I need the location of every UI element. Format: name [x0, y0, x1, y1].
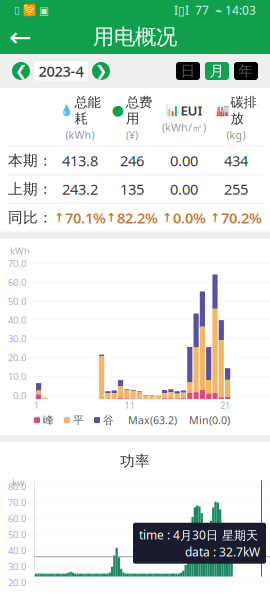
- staticText: 11: [124, 399, 134, 411]
- staticText: 🏭: [215, 104, 228, 116]
- staticText: 243.2: [62, 179, 98, 199]
- staticText: 40.0: [8, 314, 26, 326]
- staticText: 70.2%: [221, 208, 262, 227]
- staticText: Max(63.2): [128, 413, 177, 427]
- staticText: 10.0: [8, 370, 26, 383]
- staticText: 年: [238, 62, 253, 80]
- staticText: 功率: [120, 452, 150, 470]
- staticText: 平: [73, 414, 84, 427]
- staticText: 40.0: [8, 544, 26, 557]
- staticText: 413.8: [62, 151, 98, 170]
- staticText: ⬤: [112, 104, 124, 116]
- staticText: (kWh): [65, 128, 94, 142]
- staticText: ↑: [54, 211, 64, 224]
- staticText: 🛜 ▣: [20, 3, 49, 17]
- staticText: 60.0: [8, 276, 26, 288]
- staticText: ←: [9, 22, 31, 52]
- staticText: 30.0: [8, 560, 26, 573]
- staticText: 70.0: [8, 257, 26, 269]
- staticText: ❮: [15, 63, 27, 79]
- staticText: 上期：: [8, 180, 53, 198]
- staticText: 246: [120, 151, 144, 170]
- staticText: 日: [180, 62, 195, 80]
- staticText: 434: [224, 151, 248, 170]
- staticText: 📊: [165, 104, 178, 116]
- staticText: ↑: [210, 211, 220, 224]
- staticText: ↑: [106, 211, 116, 224]
- button[interactable]: 日: [176, 62, 200, 80]
- staticText: 0.00: [170, 151, 198, 170]
- staticText: data : 32.7kW: [185, 544, 260, 560]
- staticText: 0.00: [170, 179, 198, 199]
- staticText: EUI: [180, 101, 202, 119]
- button[interactable]: 月: [205, 62, 229, 80]
- staticText: 0.0: [13, 389, 26, 401]
- staticText: 本期：: [8, 151, 53, 169]
- staticText: time : 4月30日 星期天: [139, 527, 258, 543]
- staticText: 谷: [103, 414, 114, 427]
- staticText: ▯: [14, 4, 20, 16]
- staticText: 70.1%: [65, 208, 106, 227]
- staticText: 碳排放: [230, 94, 256, 127]
- staticText: 50.0: [8, 295, 26, 307]
- staticText: 135: [120, 179, 144, 199]
- staticText: 总费用: [126, 94, 152, 127]
- staticText: 82.2%: [117, 208, 158, 227]
- staticText: (¥): [126, 128, 138, 142]
- staticText: 80.0: [8, 480, 26, 493]
- staticText: 月: [209, 62, 224, 80]
- button[interactable]: Back: [0, 20, 40, 54]
- staticText: 同比：: [8, 209, 53, 227]
- staticText: ↑: [162, 211, 172, 224]
- staticText: kw: [12, 476, 24, 488]
- staticText: (kg): [226, 128, 245, 142]
- button[interactable]: 年: [234, 62, 258, 80]
- staticText: Min(0.0): [189, 413, 230, 427]
- staticText: kWh: [10, 245, 30, 257]
- staticText: 20.0: [8, 576, 26, 589]
- staticText: 21: [220, 399, 230, 411]
- staticText: 20.0: [8, 351, 26, 364]
- button[interactable]: Next period: [92, 62, 110, 80]
- button[interactable]: Previous period: [12, 62, 30, 80]
- staticText: 💧: [59, 104, 72, 116]
- staticText: 峰: [43, 414, 54, 427]
- staticText: I▯I 77 ⌁ 14:03: [174, 2, 256, 18]
- staticText: 60.0: [8, 512, 26, 525]
- staticText: 30.0: [8, 332, 26, 345]
- staticText: 总能耗: [74, 94, 100, 127]
- staticText: ❯: [95, 63, 107, 79]
- staticText: 70.0: [8, 496, 26, 509]
- staticText: 50.0: [8, 528, 26, 541]
- staticText: 1: [34, 399, 39, 411]
- staticText: 0.0%: [173, 208, 206, 227]
- staticText: (kWh/㎡): [162, 120, 206, 134]
- staticText: 用电概况: [93, 24, 177, 50]
- staticText: 255: [224, 179, 248, 199]
- staticText: 2023-4: [38, 61, 83, 81]
